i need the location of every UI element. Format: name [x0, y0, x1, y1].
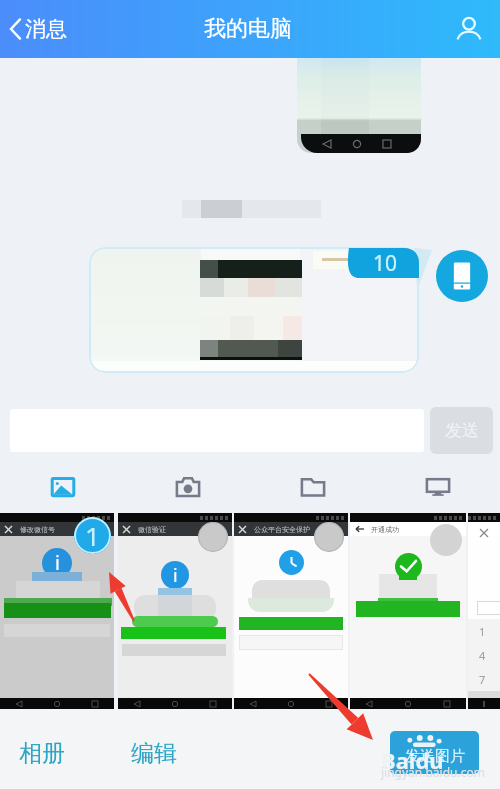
staticText: 微信验证 [138, 525, 166, 534]
button[interactable]: Screen [375, 462, 500, 512]
button[interactable]: 发送图片 [390, 731, 479, 774]
staticText: 发送 [445, 420, 479, 441]
button[interactable]: 相册 [11, 729, 73, 778]
staticText: 发送图片 [405, 747, 465, 766]
button[interactable]: 修改微信号 [0, 513, 114, 709]
staticText: jingyan.baidu.com [381, 764, 485, 780]
staticText: 相册 [19, 739, 65, 768]
button[interactable]: 编辑 [123, 729, 185, 778]
staticText: 10 [373, 249, 398, 278]
staticText: 编辑 [131, 739, 177, 768]
button[interactable]: Gallery [0, 462, 125, 512]
button[interactable]: Profile [448, 8, 490, 50]
staticText: 1 [479, 624, 486, 639]
button[interactable]: 发送 [430, 407, 493, 454]
staticText: 我的电脑 [204, 15, 292, 43]
button[interactable]: 微信验证 [118, 513, 232, 709]
staticText: 消息 [25, 16, 67, 42]
button[interactable]: Files [250, 462, 375, 512]
staticText: i [173, 563, 178, 588]
staticText: 4 [479, 648, 486, 663]
staticText: 7 [479, 672, 486, 687]
staticText: 修改微信号 [20, 525, 55, 534]
staticText: 公众平台安全保护 [254, 525, 310, 534]
button[interactable]: 1 [468, 513, 500, 709]
staticText: 开通成功 [371, 525, 399, 534]
button[interactable]: 开通成功 [350, 513, 466, 709]
button[interactable]: 消息 [0, 0, 77, 58]
button[interactable]: Device avatar [436, 250, 488, 302]
staticText: Baidu [381, 745, 444, 775]
button[interactable]: 公众平台安全保护 [234, 513, 348, 709]
staticText: 1 [85, 518, 100, 553]
staticText: i [55, 550, 60, 576]
button[interactable]: Camera [125, 462, 250, 512]
